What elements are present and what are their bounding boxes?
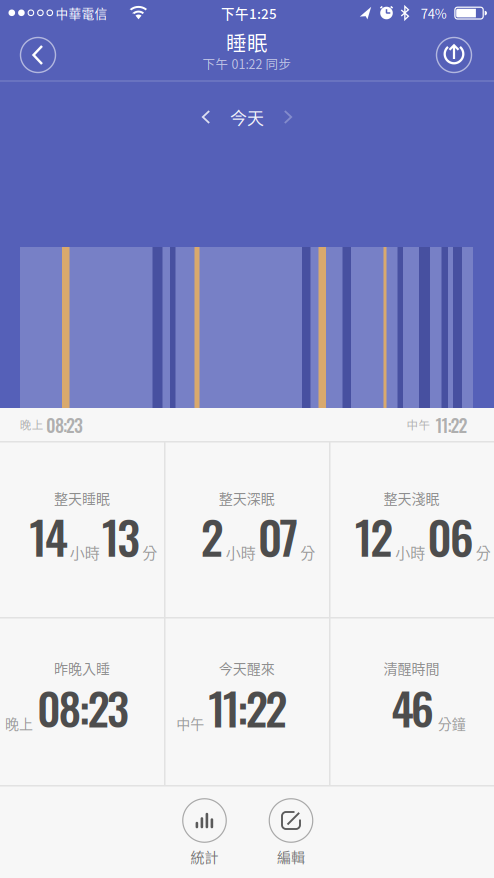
staticText: 46 — [391, 674, 434, 740]
button[interactable]: Previous day — [201, 110, 211, 124]
button[interactable]: 統計 — [169, 794, 239, 870]
staticText: 中午 — [406, 416, 430, 433]
staticText: 分 — [476, 541, 491, 563]
staticText: 睡眠 — [226, 27, 268, 57]
staticText: 晚上 — [5, 713, 33, 733]
staticText: 小時 — [395, 541, 425, 563]
button[interactable]: Sync — [436, 37, 471, 72]
staticText: 分 — [142, 541, 157, 563]
staticText: 分 — [300, 541, 315, 563]
staticText: 小時 — [70, 541, 100, 563]
staticText: 下午 01:22 同步 — [202, 54, 291, 73]
staticText: 07 — [258, 502, 298, 570]
staticText: 11:22 — [435, 411, 467, 438]
staticText: 編輯 — [277, 846, 305, 867]
staticText: 昨晚入睡 — [54, 658, 110, 678]
staticText: 14 — [29, 502, 68, 570]
staticText: 整天淺眠 — [383, 488, 439, 508]
staticText: 清醒時間 — [383, 658, 439, 678]
staticText: 08:23 — [46, 411, 83, 438]
staticText: 晚上 — [20, 416, 44, 433]
staticText: 今天醒來 — [219, 658, 275, 678]
staticText: 74% — [421, 4, 447, 22]
button[interactable]: 編輯 — [256, 794, 326, 870]
staticText: 小時 — [226, 541, 256, 563]
staticText: 統計 — [190, 846, 218, 867]
staticText: 08:23 — [37, 674, 129, 740]
button[interactable]: Next day — [283, 110, 293, 124]
staticText: 12 — [355, 502, 393, 570]
staticText: 13 — [102, 502, 140, 570]
staticText: 11:22 — [208, 674, 287, 740]
staticText: 中華電信 — [55, 4, 107, 22]
staticText: 整天深眠 — [219, 488, 275, 508]
staticText: 今天 — [230, 105, 264, 129]
staticText: 下午1:25 — [221, 3, 277, 23]
button[interactable]: Back — [20, 37, 55, 72]
staticText: 分鐘 — [438, 713, 466, 733]
staticText: 06 — [427, 502, 474, 570]
staticText: 2 — [201, 502, 224, 570]
staticText: 中午 — [176, 713, 204, 733]
staticText: 整天睡眠 — [54, 488, 110, 508]
